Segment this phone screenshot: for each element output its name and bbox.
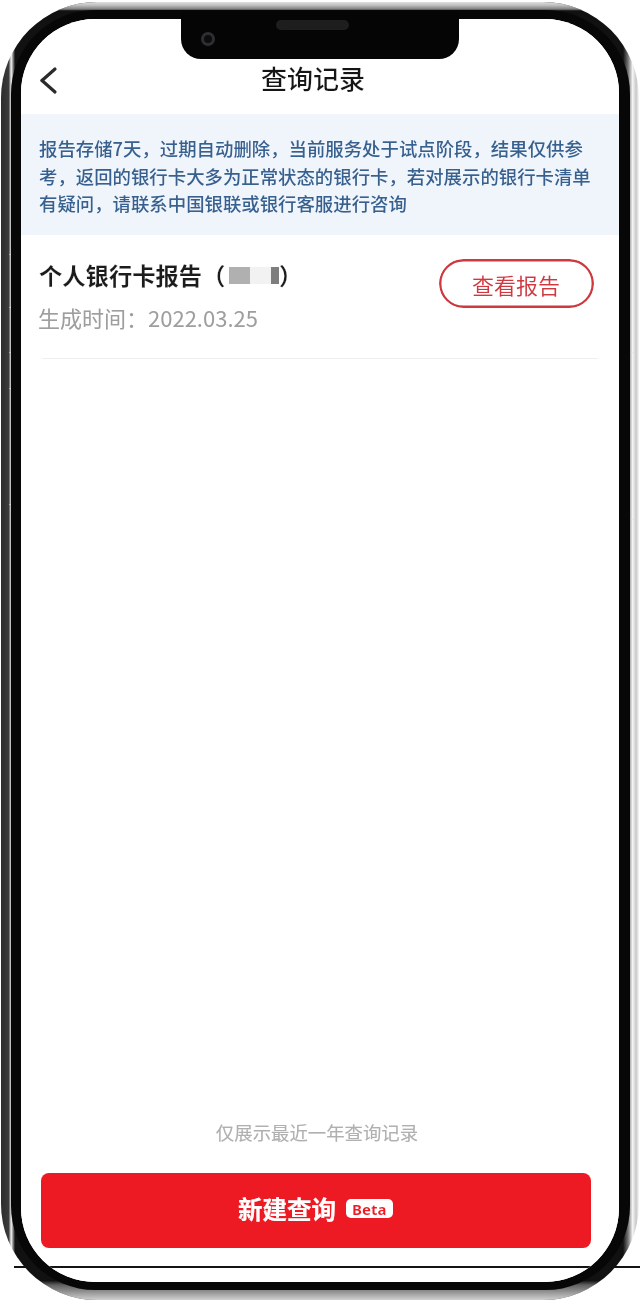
staticText: 报告存储7天，过期自动删除，当前服务处于试点阶段，结果仅供参考，返回的银行卡大多… [39,135,592,216]
button[interactable]: 新建查询 [41,1173,591,1248]
staticText: 个人银行卡报告（ [39,258,226,292]
staticText: ） [279,258,303,292]
staticText: 查看报告 [472,268,561,300]
staticText: Beta [352,1199,387,1218]
staticText: 查询记录 [261,59,366,97]
button[interactable]: Back [23,55,73,105]
staticText: 新建查询 [238,1191,336,1226]
staticText: 仅展示最近一年查询记录 [21,1119,616,1146]
staticText: 生成时间：2022.03.25 [38,301,258,333]
button[interactable]: 查看报告 [439,259,594,308]
